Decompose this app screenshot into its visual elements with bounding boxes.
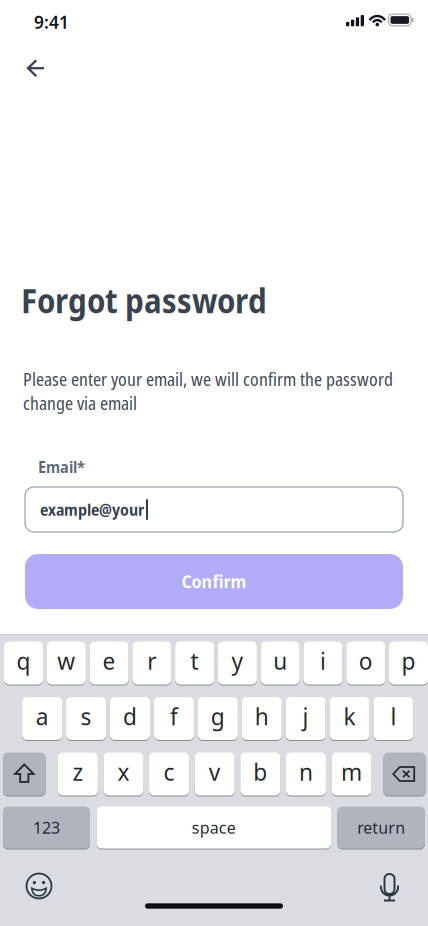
staticText: g — [211, 701, 225, 731]
staticText: q — [16, 646, 30, 676]
button[interactable]: n — [286, 752, 326, 796]
staticText: Forgot password — [21, 278, 267, 323]
button[interactable]: space — [97, 806, 331, 849]
button[interactable]: Email — [25, 487, 403, 532]
button[interactable]: x — [103, 752, 143, 796]
button[interactable]: i — [303, 641, 342, 685]
staticText: t — [191, 646, 199, 676]
button[interactable]: Shift — [3, 752, 46, 796]
staticText: return — [357, 817, 405, 838]
button[interactable]: Confirm — [25, 554, 403, 609]
staticText: change via email — [23, 391, 137, 415]
button[interactable]: 123 — [3, 806, 90, 849]
staticText: space — [192, 817, 236, 838]
button[interactable]: d — [110, 696, 150, 740]
staticText: r — [147, 646, 156, 676]
staticText: Email* — [38, 457, 85, 477]
button[interactable]: Delete — [383, 752, 426, 796]
staticText: Please enter your email, we will confirm… — [23, 367, 393, 391]
staticText: s — [81, 701, 92, 731]
staticText: v — [209, 757, 221, 787]
staticText: b — [253, 757, 267, 787]
button[interactable]: l — [373, 696, 413, 740]
staticText: l — [390, 701, 396, 731]
staticText: k — [343, 701, 355, 731]
button[interactable]: return — [337, 806, 425, 849]
button[interactable]: a — [22, 696, 62, 740]
button[interactable]: Dictation — [374, 867, 405, 907]
staticText: w — [57, 646, 75, 676]
staticText: c — [164, 757, 175, 787]
button[interactable]: b — [240, 752, 280, 796]
staticText: u — [273, 646, 287, 676]
button[interactable]: k — [329, 696, 369, 740]
button[interactable]: Emoji — [24, 871, 54, 901]
staticText: n — [299, 757, 313, 787]
staticText: example@your — [40, 499, 144, 520]
button[interactable]: v — [195, 752, 235, 796]
button[interactable]: p — [389, 641, 428, 685]
staticText: Confirm — [181, 570, 246, 593]
button[interactable]: o — [346, 641, 385, 685]
button[interactable]: h — [242, 696, 282, 740]
button[interactable]: q — [4, 641, 43, 685]
staticText: i — [320, 646, 326, 676]
staticText: a — [36, 701, 49, 731]
button[interactable]: y — [218, 641, 257, 685]
staticText: y — [231, 646, 243, 676]
staticText: e — [103, 646, 116, 676]
button[interactable]: s — [66, 696, 106, 740]
button[interactable]: z — [58, 752, 98, 796]
button[interactable]: w — [47, 641, 86, 685]
button[interactable]: j — [286, 696, 326, 740]
button[interactable]: c — [149, 752, 189, 796]
staticText: 123 — [33, 817, 60, 838]
staticText: f — [170, 701, 178, 731]
button[interactable]: r — [132, 641, 171, 685]
button[interactable]: e — [90, 641, 129, 685]
staticText: h — [255, 701, 269, 731]
staticText: x — [117, 757, 129, 787]
button[interactable]: m — [331, 752, 371, 796]
staticText: j — [303, 701, 309, 731]
button[interactable]: g — [198, 696, 238, 740]
staticText: p — [401, 646, 415, 676]
staticText: 9:41 — [34, 10, 69, 33]
staticText: o — [359, 646, 373, 676]
button[interactable]: Back — [14, 46, 58, 90]
button[interactable]: u — [261, 641, 300, 685]
button[interactable]: f — [154, 696, 194, 740]
button[interactable]: t — [175, 641, 214, 685]
staticText: z — [72, 757, 83, 787]
staticText: m — [341, 757, 362, 787]
staticText: d — [123, 701, 137, 731]
